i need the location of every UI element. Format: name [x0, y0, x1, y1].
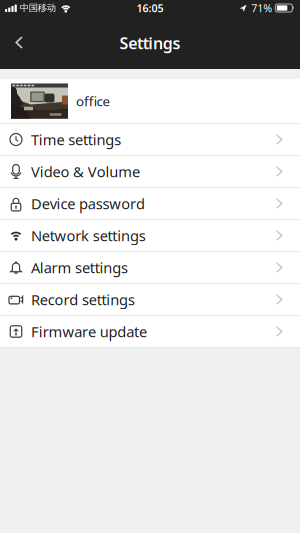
button[interactable]: Back [0, 32, 24, 57]
staticText: Alarm settings [31, 258, 128, 277]
button[interactable]: office [0, 79, 300, 123]
staticText: 16:05 [136, 1, 163, 15]
staticText: 中国移动 [20, 2, 56, 14]
button[interactable]: Time settings [0, 124, 300, 156]
staticText: Firmware update [31, 322, 147, 341]
staticText: office [76, 92, 110, 110]
staticText: Settings [119, 32, 180, 54]
button[interactable]: Device password [0, 188, 300, 220]
staticText: Video & Volume [31, 162, 140, 181]
button[interactable]: Alarm settings [0, 252, 300, 284]
button[interactable]: Record settings [0, 284, 300, 316]
button[interactable]: Video & Volume [0, 156, 300, 188]
staticText: Device password [31, 194, 145, 213]
staticText: Network settings [31, 226, 146, 245]
button[interactable]: Network settings [0, 220, 300, 252]
staticText: Time settings [31, 130, 121, 149]
staticText: 71% [251, 1, 272, 15]
staticText: Record settings [31, 290, 135, 309]
button[interactable]: Firmware update [0, 316, 300, 348]
